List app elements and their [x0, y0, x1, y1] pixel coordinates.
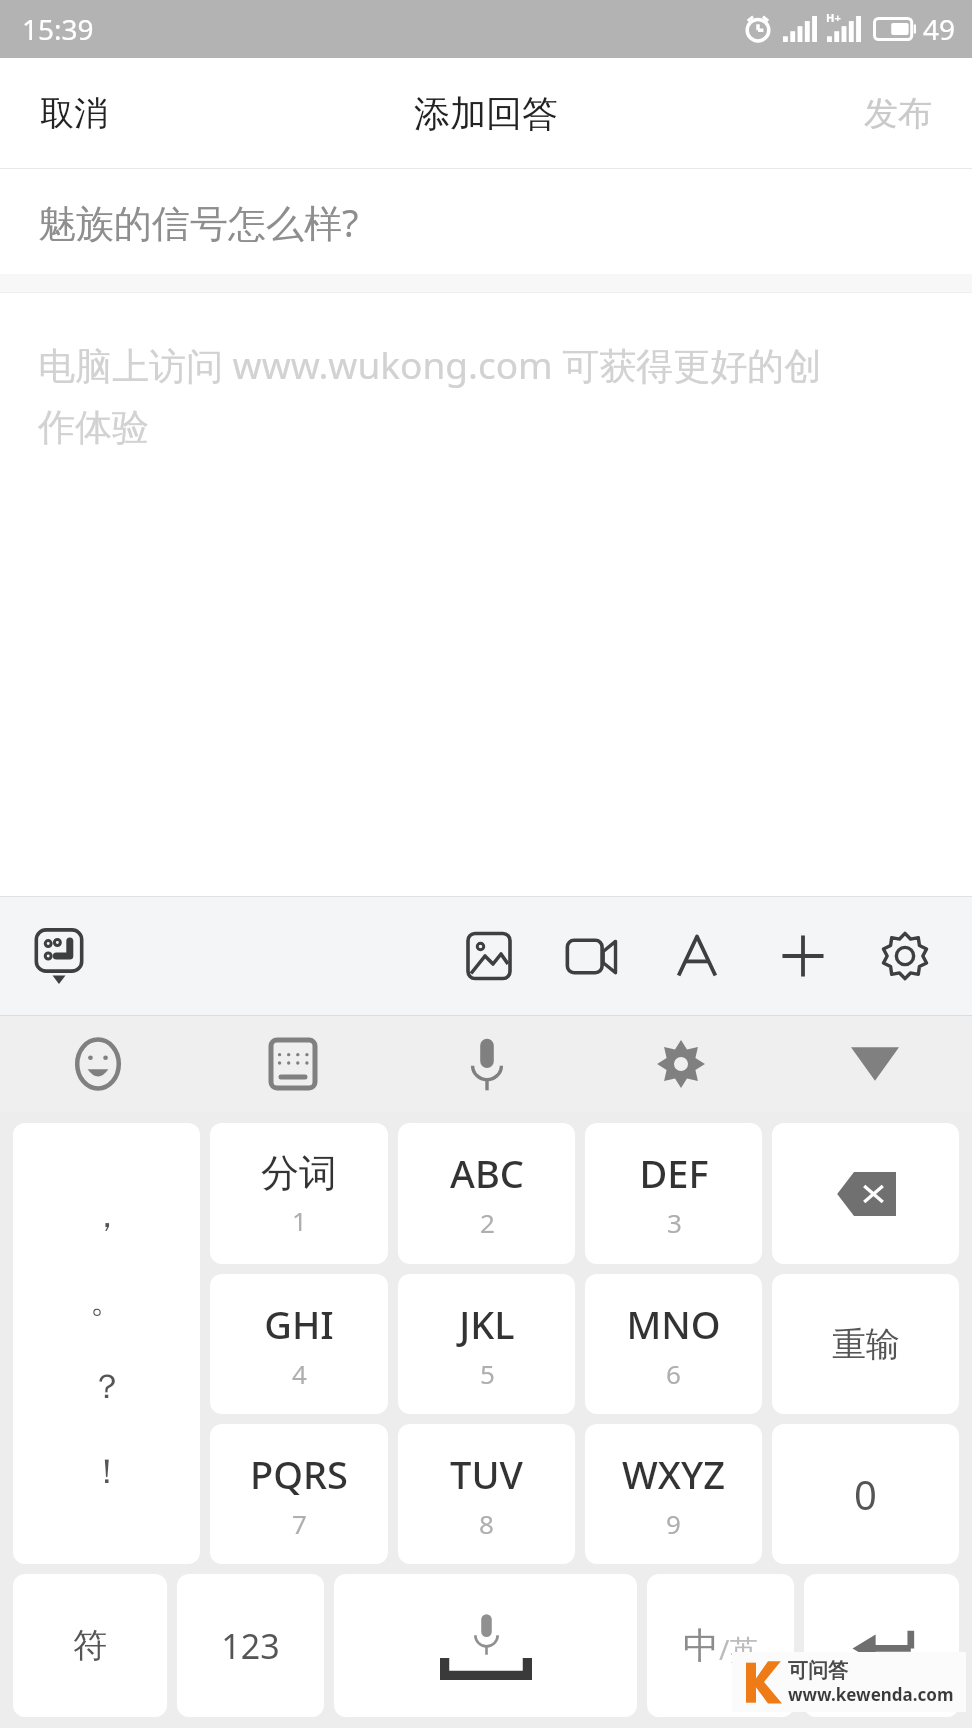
staticText: 发布 — [864, 92, 932, 135]
staticText: 中 — [683, 1623, 719, 1668]
staticText: 49 — [923, 10, 956, 48]
button[interactable]: 魅族的信号怎么样? — [0, 169, 972, 274]
button[interactable]: Emoji — [0, 1016, 195, 1112]
staticText: / — [719, 1630, 730, 1668]
staticText: TUV — [450, 1448, 523, 1500]
staticText: 123 — [221, 1623, 280, 1669]
button[interactable]: Keyboard settings — [584, 1016, 778, 1112]
button[interactable]: ， — [13, 1123, 200, 1564]
button[interactable]: Settings — [856, 915, 954, 997]
staticText: 0 — [854, 1467, 877, 1521]
button[interactable]: 符 — [13, 1574, 167, 1717]
button[interactable]: 分词 — [210, 1123, 388, 1264]
button[interactable]: WXYZ — [585, 1424, 762, 1564]
button[interactable]: Add — [750, 915, 856, 997]
staticText: 9 — [666, 1506, 681, 1541]
button[interactable]: PQRS — [210, 1424, 388, 1564]
staticText: 6 — [666, 1356, 681, 1391]
button[interactable]: MNO — [585, 1274, 762, 1414]
staticText: H+ — [826, 10, 841, 25]
button[interactable] — [772, 1123, 959, 1264]
button[interactable]: 中 — [647, 1574, 794, 1717]
staticText: 魅族的信号怎么样? — [38, 196, 359, 248]
button[interactable]: DEF — [585, 1123, 762, 1264]
staticText: ？ — [90, 1365, 124, 1408]
staticText: ， — [90, 1194, 124, 1237]
staticText: ！ — [90, 1450, 124, 1493]
button[interactable]: Hide keyboard — [778, 1016, 972, 1112]
button[interactable]: Insert image — [438, 917, 540, 995]
staticText: ABC — [450, 1147, 524, 1199]
staticText: MNO — [626, 1298, 721, 1350]
staticText: 4 — [292, 1356, 307, 1391]
staticText: 7 — [292, 1506, 307, 1541]
button[interactable]: 电脑上访问 www.wukong.com 可获得更好的创作体验 — [0, 293, 972, 896]
staticText: WXYZ — [622, 1448, 725, 1500]
button[interactable]: ABC — [398, 1123, 575, 1264]
button[interactable]: GHI — [210, 1274, 388, 1414]
button[interactable] — [334, 1574, 637, 1717]
staticText: JKL — [459, 1298, 515, 1350]
button[interactable]: 重输 — [772, 1274, 959, 1414]
staticText: DEF — [639, 1147, 709, 1199]
button[interactable] — [804, 1574, 959, 1717]
button[interactable]: TUV — [398, 1424, 575, 1564]
button[interactable]: 发布 — [824, 72, 972, 155]
button[interactable]: Insert video — [540, 914, 644, 998]
staticText: 重输 — [832, 1323, 900, 1366]
button[interactable]: Keyboard layout — [195, 1016, 390, 1112]
button[interactable]: Emoji panel — [20, 917, 98, 995]
button[interactable]: 123 — [177, 1574, 324, 1717]
staticText: 1 — [292, 1203, 307, 1238]
staticText: 可问答 — [788, 1658, 848, 1683]
button[interactable]: 取消 — [0, 72, 148, 155]
staticText: 添加回答 — [414, 91, 558, 136]
staticText: 取消 — [40, 92, 108, 135]
staticText: 8 — [479, 1506, 494, 1541]
staticText: 5 — [480, 1356, 495, 1391]
staticText: 电脑上访问 www.wukong.com 可获得更好的创作体验 — [38, 339, 842, 451]
staticText: 符 — [73, 1624, 107, 1667]
staticText: 分词 — [261, 1149, 337, 1197]
button[interactable]: JKL — [398, 1274, 575, 1414]
button[interactable]: 0 — [772, 1424, 959, 1564]
staticText: 。 — [90, 1279, 124, 1322]
staticText: 2 — [480, 1205, 495, 1240]
staticText: 英 — [730, 1633, 758, 1668]
staticText: 15:39 — [22, 10, 94, 48]
staticText: GHI — [264, 1298, 334, 1350]
button[interactable]: Voice input — [390, 1016, 584, 1112]
staticText: PQRS — [250, 1448, 348, 1500]
button[interactable]: Text format — [644, 915, 750, 997]
staticText: www.kewenda.com — [788, 1683, 954, 1706]
staticText: 3 — [667, 1205, 682, 1240]
